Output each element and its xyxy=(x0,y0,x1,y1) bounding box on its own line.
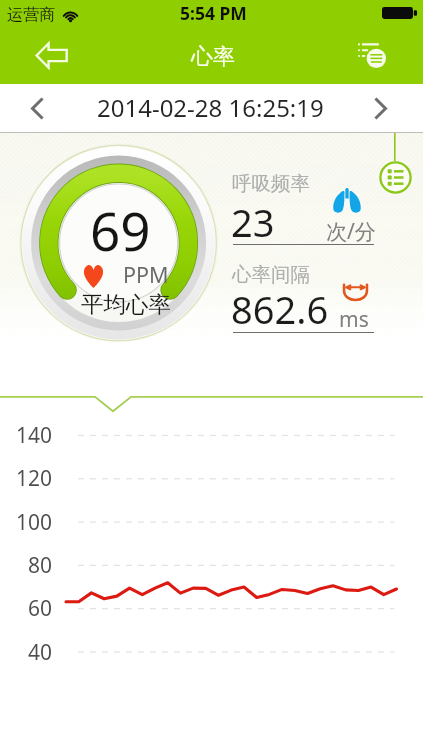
staticText: 862.6 xyxy=(231,283,329,335)
button[interactable]: Show details xyxy=(379,161,412,194)
staticText: 运营商 xyxy=(7,5,55,25)
staticText: 23 xyxy=(231,196,275,248)
staticText: 140 xyxy=(15,421,52,450)
staticText: 100 xyxy=(15,508,52,537)
staticText: 5:54 PM xyxy=(180,1,247,25)
button[interactable]: Back xyxy=(24,32,79,78)
staticText: 心率 xyxy=(191,43,235,71)
staticText: 40 xyxy=(27,638,52,667)
button[interactable]: Next day xyxy=(336,84,423,133)
staticText: 平均心率 xyxy=(81,290,171,318)
staticText: 120 xyxy=(15,464,52,493)
staticText: 80 xyxy=(27,551,52,580)
staticText: 次/分 xyxy=(326,217,376,246)
staticText: 60 xyxy=(27,594,52,623)
staticText: PPM xyxy=(123,260,169,289)
staticText: ms xyxy=(339,305,369,334)
button[interactable]: Records xyxy=(347,32,397,78)
staticText: 69 xyxy=(90,194,151,266)
staticText: 2014-02-28 16:25:19 xyxy=(97,91,324,124)
staticText: 心率间隔 xyxy=(232,262,310,287)
button[interactable]: Previous day xyxy=(0,84,75,133)
staticText: 呼吸频率 xyxy=(232,171,310,196)
